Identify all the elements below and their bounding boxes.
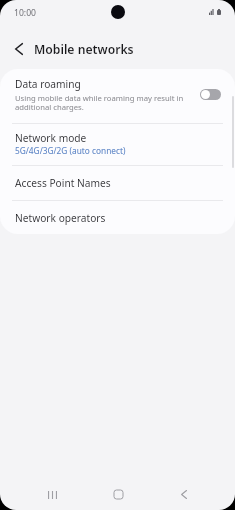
button[interactable]: Data roaming <box>0 69 235 123</box>
staticText: 5G/4G/3G/2G (auto connect) <box>15 145 126 156</box>
button[interactable]: Network operators <box>0 200 235 234</box>
button[interactable]: Access Point Names <box>0 165 235 199</box>
button[interactable]: Back <box>172 483 195 506</box>
button[interactable]: Data roaming switch <box>200 89 221 100</box>
staticText: 10:00 <box>14 7 36 19</box>
button[interactable]: Back <box>7 37 30 60</box>
staticText: Network operators <box>15 211 106 225</box>
staticText: Access Point Names <box>15 176 111 190</box>
staticText: Using mobile data while roaming may resu… <box>15 93 195 112</box>
staticText: Mobile networks <box>34 41 134 58</box>
button[interactable]: Recent apps <box>41 483 64 506</box>
staticText: Network mode <box>15 131 87 145</box>
button[interactable]: Network mode <box>0 123 235 166</box>
staticText: Data roaming <box>15 77 81 91</box>
button[interactable]: Home <box>107 483 130 506</box>
